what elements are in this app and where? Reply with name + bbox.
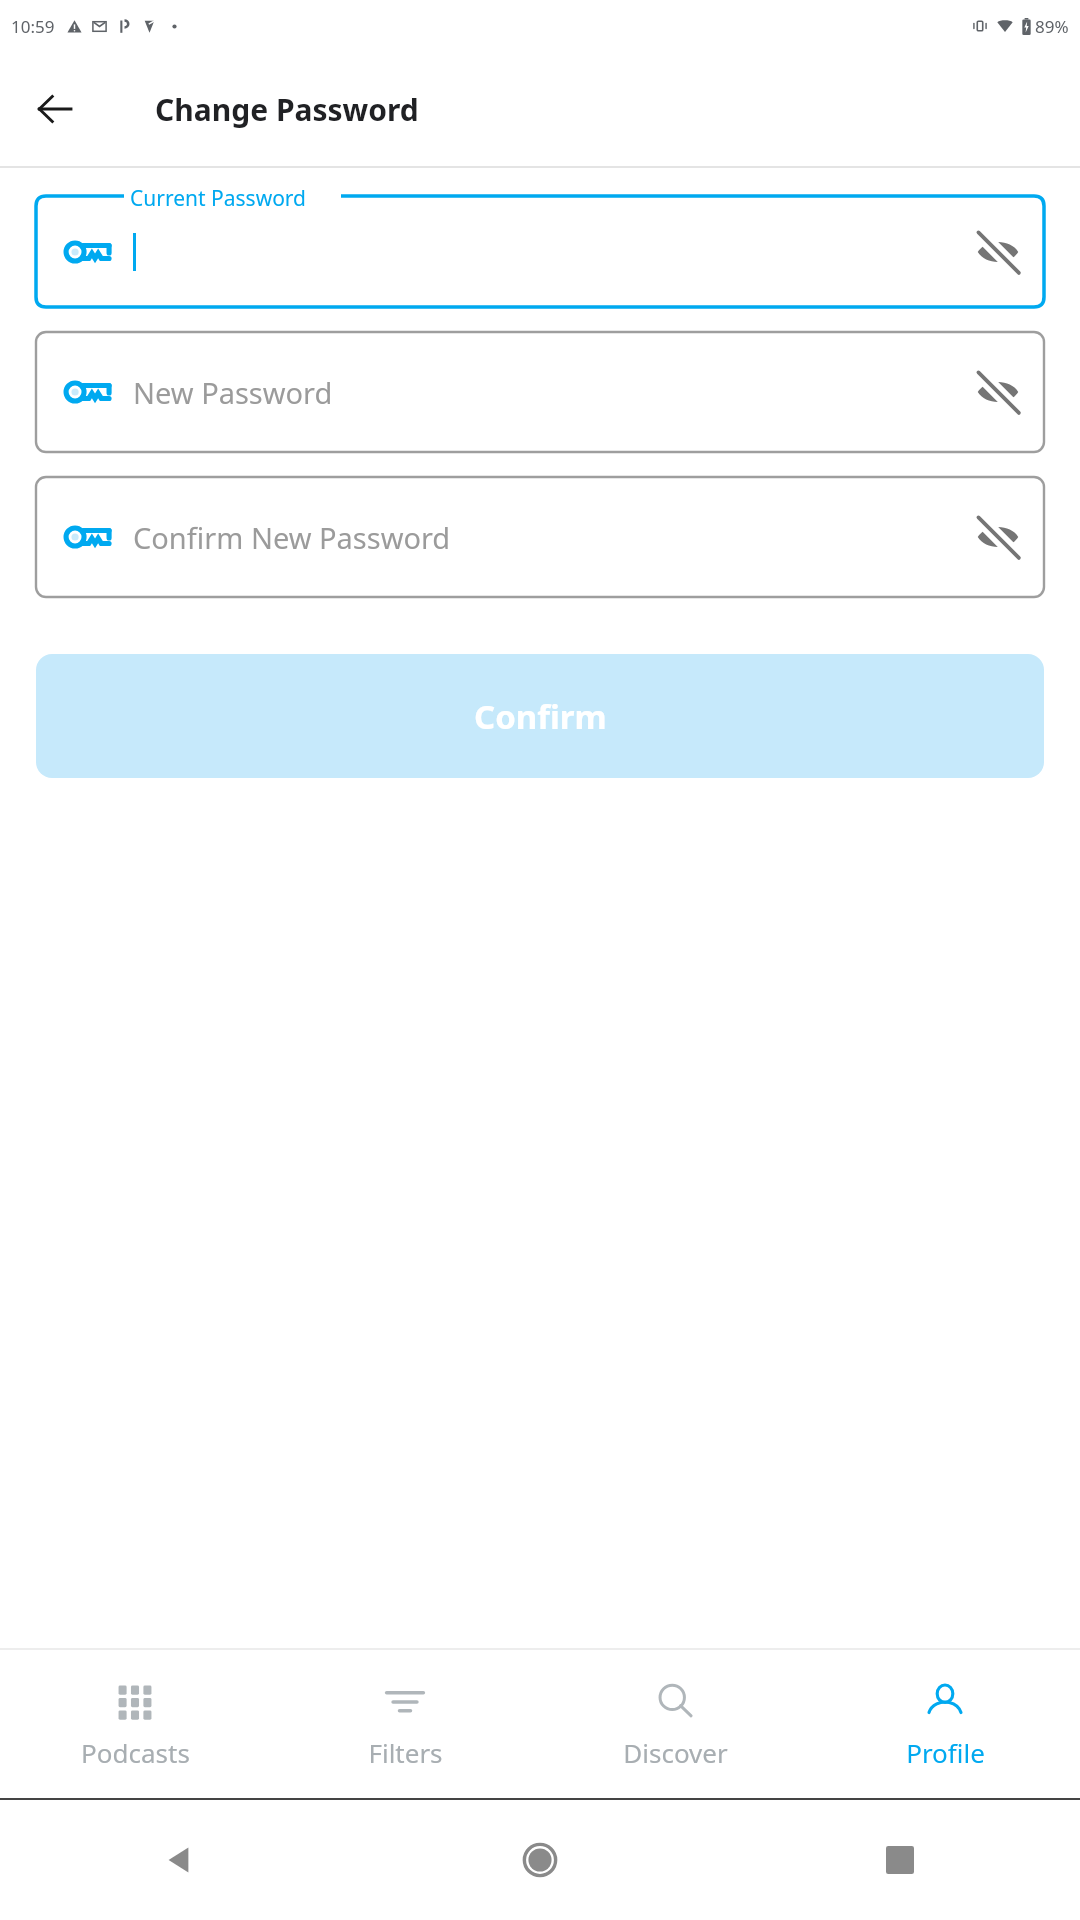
staticText: Discover (623, 1735, 728, 1770)
staticText: 10:59 (11, 15, 55, 38)
button[interactable]: Filters (270, 1650, 540, 1798)
staticText: Filters (368, 1735, 443, 1770)
staticText: Podcasts (81, 1735, 190, 1770)
staticText: Change Password (155, 89, 419, 130)
button[interactable]: Toggle password visibility (960, 354, 1036, 430)
button[interactable]: Back (148, 1828, 212, 1892)
button[interactable]: Home (508, 1828, 572, 1892)
button[interactable]: Discover (540, 1650, 810, 1798)
button[interactable]: Toggle password visibility (960, 214, 1036, 290)
button[interactable]: New Password (36, 332, 1044, 452)
staticText: 89% (1035, 15, 1069, 38)
button[interactable]: Back (22, 76, 88, 142)
staticText: Profile (906, 1735, 985, 1770)
staticText: New Password (133, 373, 333, 412)
staticText: Confirm New Password (133, 518, 451, 557)
button[interactable]: Toggle password visibility (960, 499, 1036, 575)
button[interactable]: Podcasts (0, 1650, 270, 1798)
button[interactable]: Profile (810, 1650, 1080, 1798)
button[interactable]: Confirm (36, 654, 1044, 778)
button[interactable]: Confirm New Password (36, 477, 1044, 597)
button[interactable]: Current Password (36, 185, 1044, 307)
staticText: Confirm (474, 694, 607, 739)
button[interactable]: Recents (868, 1828, 932, 1892)
staticText: Current Password (130, 184, 307, 213)
